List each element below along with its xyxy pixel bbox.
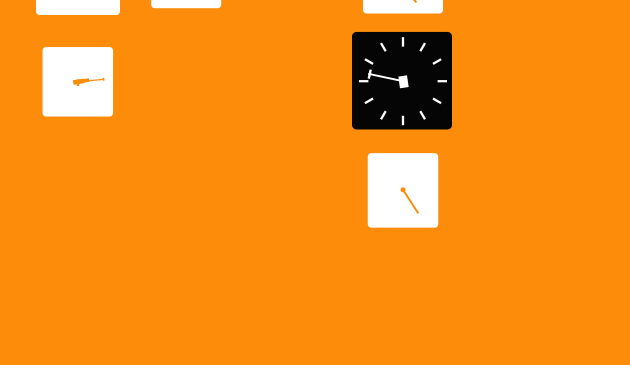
button[interactable]: Clock widget [151,0,221,8]
button[interactable]: Clock widget [363,0,443,13]
button[interactable]: Clock widget [368,153,438,228]
button[interactable]: Clock widget [352,32,452,129]
button[interactable]: Clock widget [42,47,113,116]
button[interactable]: Clock widget [36,0,120,15]
